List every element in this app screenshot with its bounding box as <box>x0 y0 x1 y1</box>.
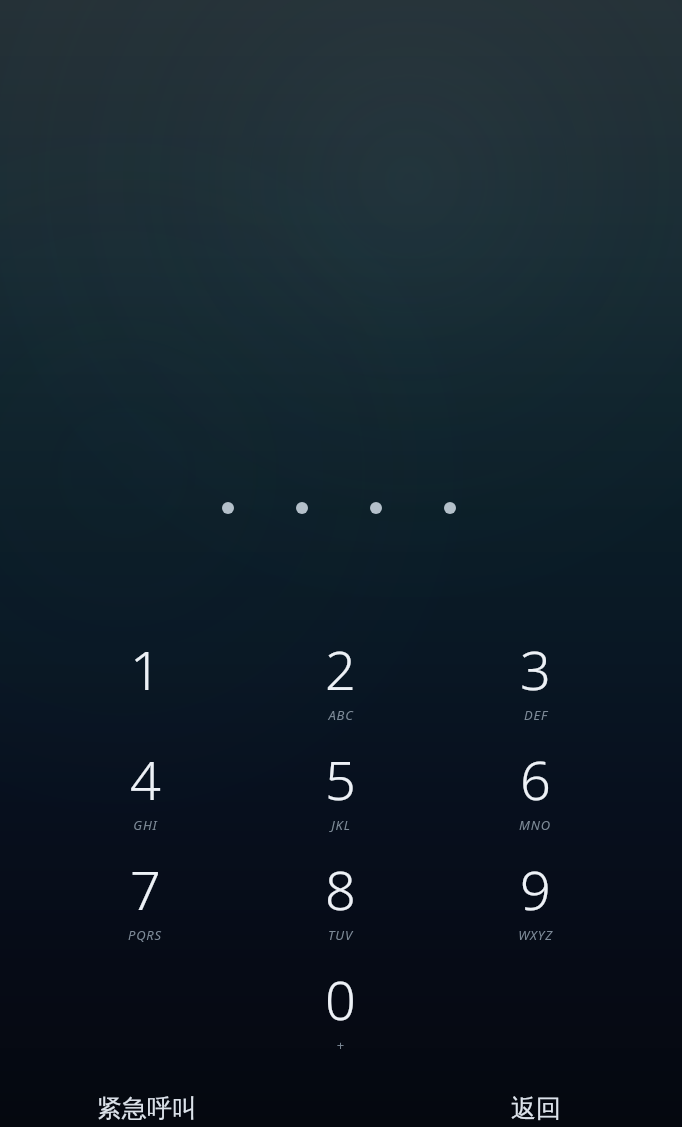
staticText: 8 <box>325 852 356 926</box>
staticText: 4 <box>130 742 161 816</box>
staticText: 3 <box>520 632 551 706</box>
button[interactable]: Key 0 <box>285 962 395 1066</box>
button[interactable]: Key 8 <box>285 852 395 956</box>
staticText: JKL <box>331 816 351 834</box>
button[interactable]: Key 4 <box>90 742 200 846</box>
button[interactable]: 紧急呼叫 <box>72 1086 222 1127</box>
staticText: 紧急呼叫 <box>97 1093 197 1124</box>
staticText: 返回 <box>511 1093 561 1124</box>
button[interactable]: 返回 <box>486 1086 586 1127</box>
staticText: GHI <box>133 816 158 834</box>
button[interactable]: Key 3 <box>480 632 590 736</box>
staticText: TUV <box>328 926 353 944</box>
staticText: MNO <box>519 816 551 834</box>
staticText: ABC <box>328 706 354 724</box>
button[interactable]: Key 9 <box>480 852 590 956</box>
staticText: 2 <box>325 632 356 706</box>
staticText: PQRS <box>128 926 162 944</box>
staticText: 9 <box>520 852 551 926</box>
staticText: 7 <box>130 852 161 926</box>
button[interactable]: Key 1 <box>90 632 200 736</box>
staticText: DEF <box>524 706 548 724</box>
staticText: WXYZ <box>518 926 553 944</box>
button[interactable]: Key 7 <box>90 852 200 956</box>
staticText: 1 <box>130 632 161 706</box>
button[interactable]: Key 6 <box>480 742 590 846</box>
staticText: 6 <box>520 742 551 816</box>
staticText: + <box>336 1036 345 1054</box>
staticText: 0 <box>325 962 356 1036</box>
button[interactable]: Key 2 <box>285 632 395 736</box>
staticText: 5 <box>325 742 356 816</box>
button[interactable]: Key 5 <box>285 742 395 846</box>
